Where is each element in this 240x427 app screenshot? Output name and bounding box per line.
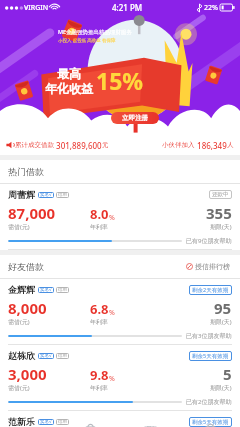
staticText: % bbox=[109, 213, 115, 223]
staticText: % bbox=[109, 308, 115, 318]
staticText: 年化收益 bbox=[45, 81, 93, 96]
staticText: 期限(天) bbox=[210, 318, 232, 326]
staticText: VIRGIN bbox=[24, 3, 49, 13]
staticText: 301,889,600 bbox=[54, 140, 102, 151]
staticText: 8,000 bbox=[8, 298, 47, 318]
staticText: 需借(元) bbox=[8, 223, 30, 231]
staticText: 剩余5天有效期 bbox=[192, 418, 229, 426]
staticText: 金辉辉 bbox=[8, 284, 35, 295]
staticText: 实名√ bbox=[40, 353, 52, 359]
staticText: 信用 bbox=[58, 192, 67, 198]
button[interactable]: 范新乐 bbox=[0, 411, 240, 427]
staticText: 累计成交借款 bbox=[15, 141, 54, 149]
staticText: 6.8 bbox=[90, 300, 109, 318]
staticText: 需借(元) bbox=[8, 384, 30, 392]
staticText: 立即注册 bbox=[122, 114, 148, 122]
staticText: 期限(天) bbox=[210, 223, 232, 231]
staticText: 已有2位朋友帮助 bbox=[186, 398, 232, 406]
staticText: 实名√ bbox=[40, 419, 52, 425]
staticText: 95 bbox=[214, 298, 232, 318]
staticText: 15% bbox=[96, 65, 144, 96]
staticText: 信用 bbox=[58, 419, 67, 425]
staticText: 实名√ bbox=[40, 192, 52, 198]
button[interactable]: 赵栋欣 bbox=[0, 345, 240, 411]
staticText: 87,000 bbox=[8, 203, 56, 223]
staticText: 22% bbox=[204, 3, 218, 13]
staticText: 4:21 PM bbox=[112, 2, 143, 13]
staticText: 8.0 bbox=[90, 205, 109, 223]
button[interactable]: 立即注册 bbox=[111, 112, 159, 124]
staticText: 5 bbox=[223, 364, 232, 384]
staticText: 还款中 bbox=[212, 191, 229, 198]
staticText: ME金融强势推出精品理财服务 bbox=[58, 28, 133, 36]
staticText: 好友借款 bbox=[8, 261, 44, 272]
button[interactable]: 金辉辉 bbox=[0, 279, 240, 345]
staticText: 已有3位朋友帮助 bbox=[186, 332, 232, 340]
staticText: 年利率 bbox=[90, 384, 108, 392]
staticText: 小投入 起投低 高收益 有保障 bbox=[58, 37, 116, 43]
staticText: 范新乐 bbox=[8, 416, 35, 427]
staticText: % bbox=[109, 374, 115, 384]
staticText: 3,000 bbox=[8, 364, 47, 384]
staticText: 授信排行榜 bbox=[195, 262, 230, 271]
staticText: 实名√ bbox=[40, 287, 52, 293]
staticText: 人 bbox=[227, 141, 234, 149]
button[interactable]: 促销横幅 最高年化收益15% 立即注册 bbox=[0, 15, 240, 135]
staticText: 剩余2天有效期 bbox=[192, 286, 229, 294]
staticText: 信用 bbox=[58, 353, 67, 359]
staticText: 355 bbox=[206, 203, 232, 223]
staticText: 年利率 bbox=[90, 223, 108, 231]
staticText: 周蕾辉 bbox=[8, 189, 35, 200]
staticText: 最高 bbox=[57, 66, 81, 81]
staticText: 剩余5天有效期 bbox=[192, 352, 229, 360]
button[interactable]: 授信排行榜 bbox=[184, 259, 232, 274]
staticText: 需借(元) bbox=[8, 318, 30, 326]
staticText: 已有9位朋友帮助 bbox=[186, 237, 232, 245]
staticText: 赵栋欣 bbox=[8, 350, 35, 361]
staticText: 元 bbox=[102, 141, 109, 149]
staticText: 期限(天) bbox=[210, 384, 232, 392]
staticText: 热门借款 bbox=[8, 166, 44, 177]
staticText: 信用 bbox=[58, 287, 67, 293]
button[interactable]: 周蕾辉 bbox=[0, 184, 240, 250]
staticText: 186,349 bbox=[195, 140, 227, 151]
staticText: 9.8 bbox=[90, 366, 109, 384]
staticText: 年利率 bbox=[90, 318, 108, 326]
staticText: 小伙伴加入 bbox=[162, 141, 195, 149]
